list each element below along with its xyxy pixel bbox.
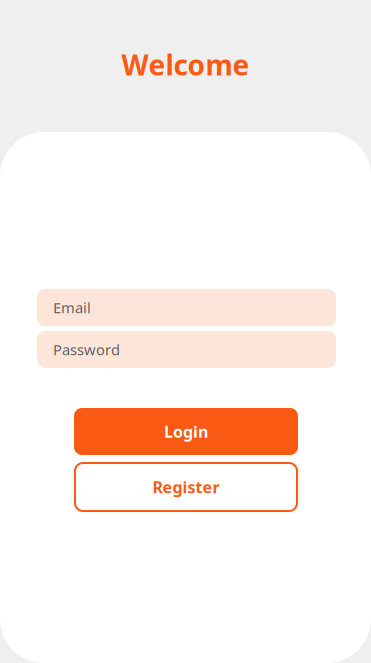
staticText: Welcome bbox=[121, 46, 249, 83]
button[interactable]: Email bbox=[37, 289, 336, 326]
button[interactable]: Login bbox=[74, 408, 298, 455]
button[interactable]: Password bbox=[37, 331, 336, 368]
staticText: Login bbox=[164, 421, 208, 442]
staticText: Register bbox=[152, 476, 219, 498]
staticText: Password bbox=[53, 340, 120, 359]
staticText: Email bbox=[53, 298, 91, 317]
button[interactable]: Register bbox=[74, 462, 298, 512]
